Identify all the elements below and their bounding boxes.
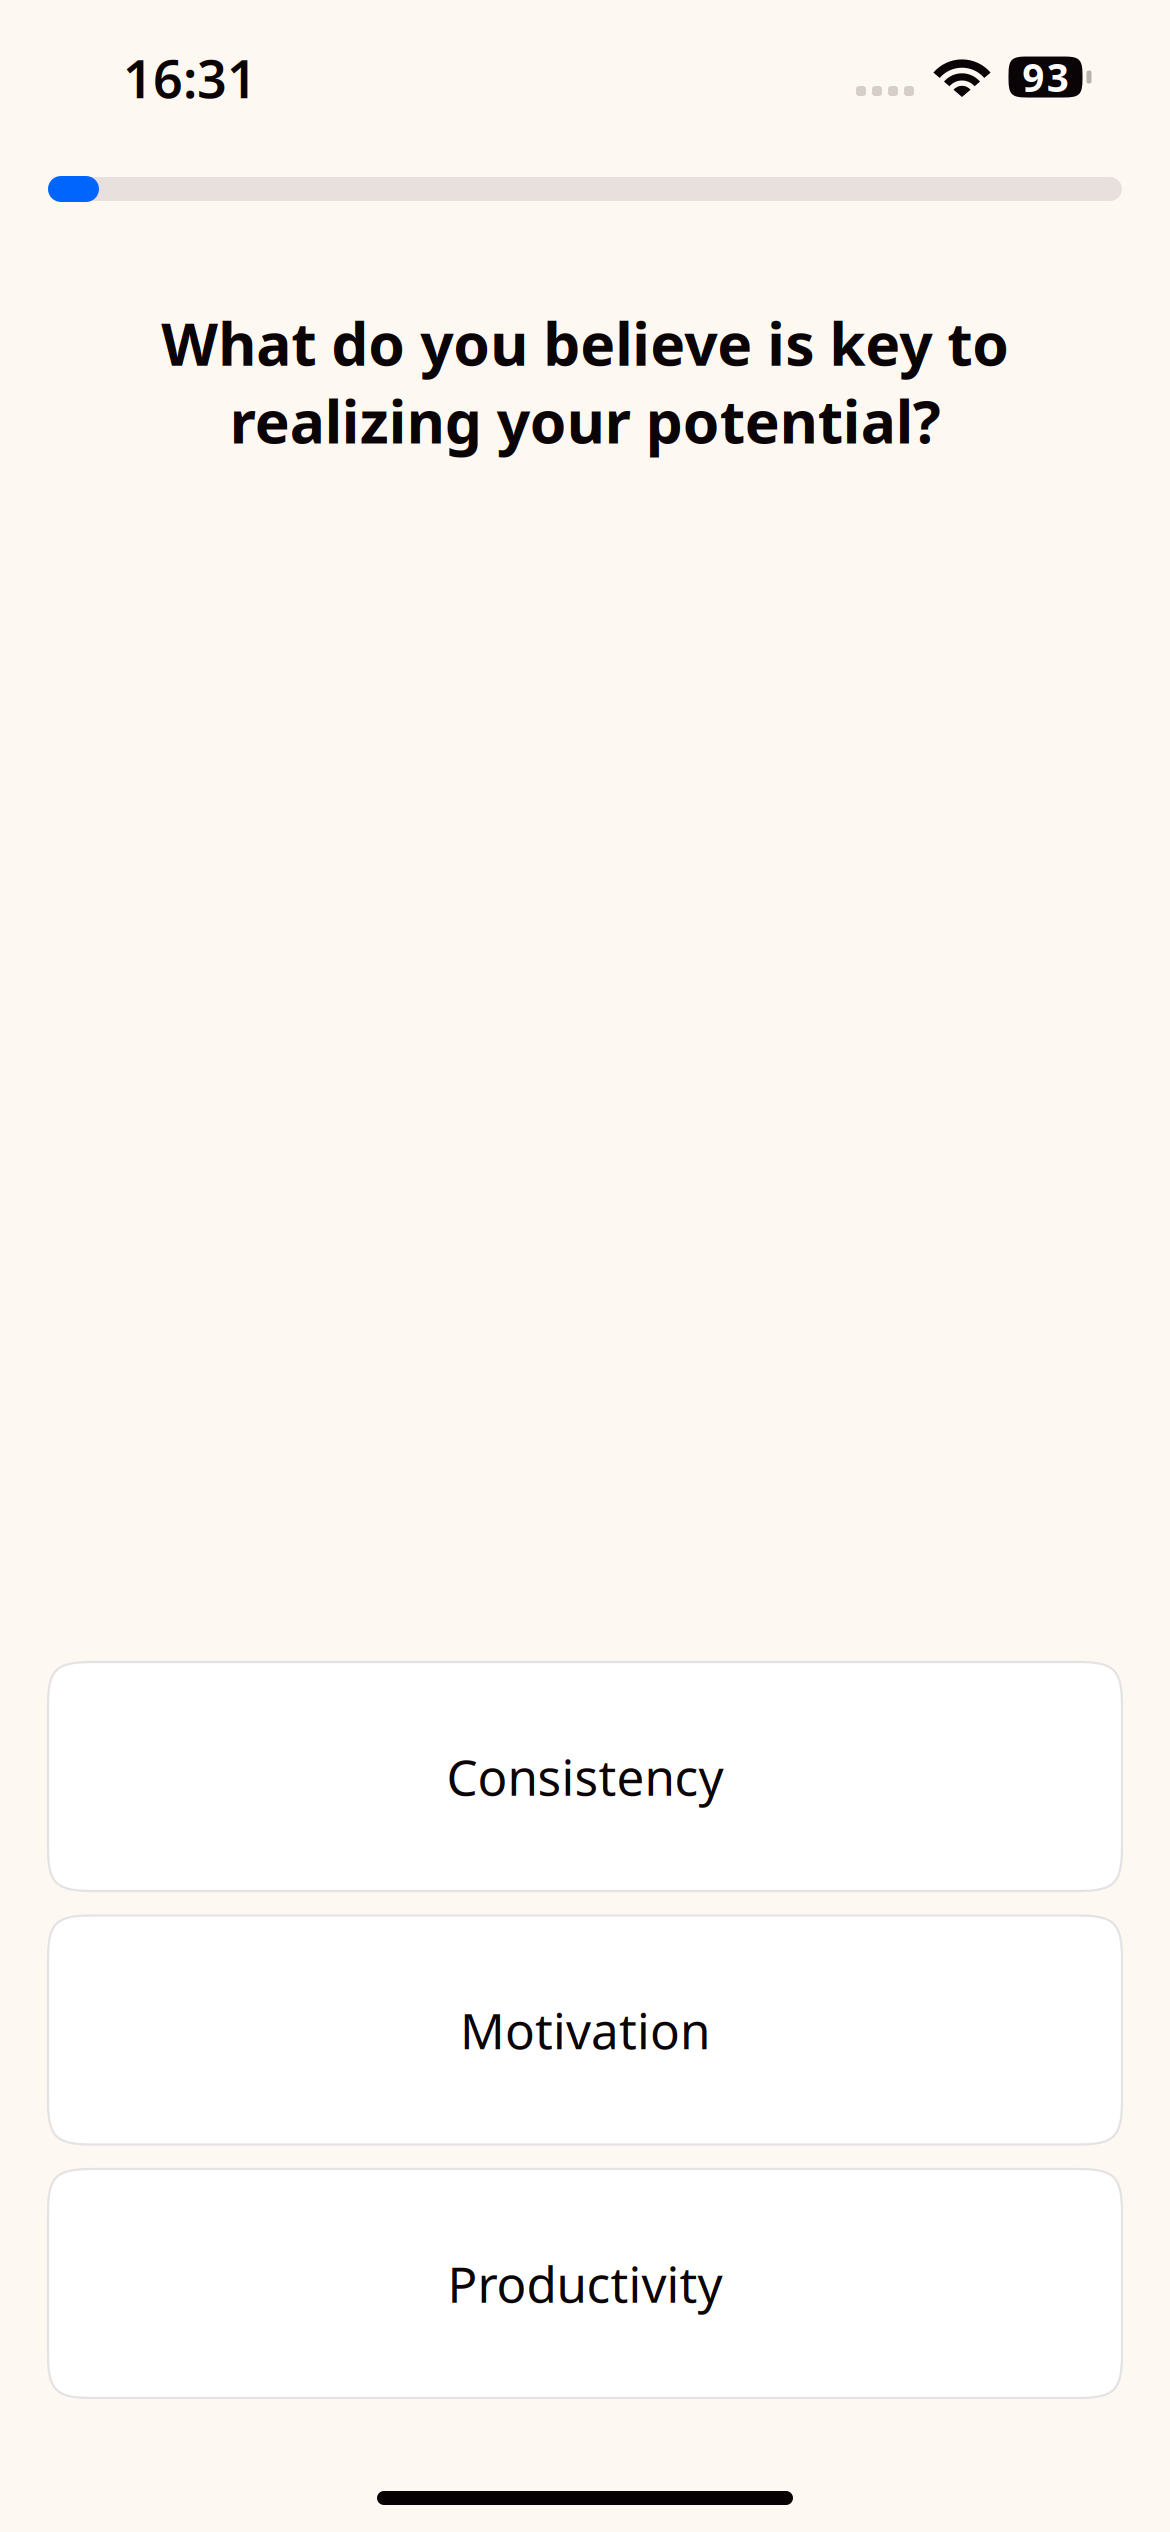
staticText: What do you believe is key to realizing … [161,304,1009,460]
staticText: 93 [1022,51,1069,103]
button[interactable]: Consistency [48,1662,1122,1891]
staticText: Productivity [447,2251,722,2316]
staticText: Consistency [446,1744,723,1809]
staticText: Motivation [460,1997,710,2063]
staticText: 16:31 [123,43,257,113]
button[interactable]: Productivity [48,2169,1122,2398]
button[interactable]: Motivation [48,1915,1122,2144]
